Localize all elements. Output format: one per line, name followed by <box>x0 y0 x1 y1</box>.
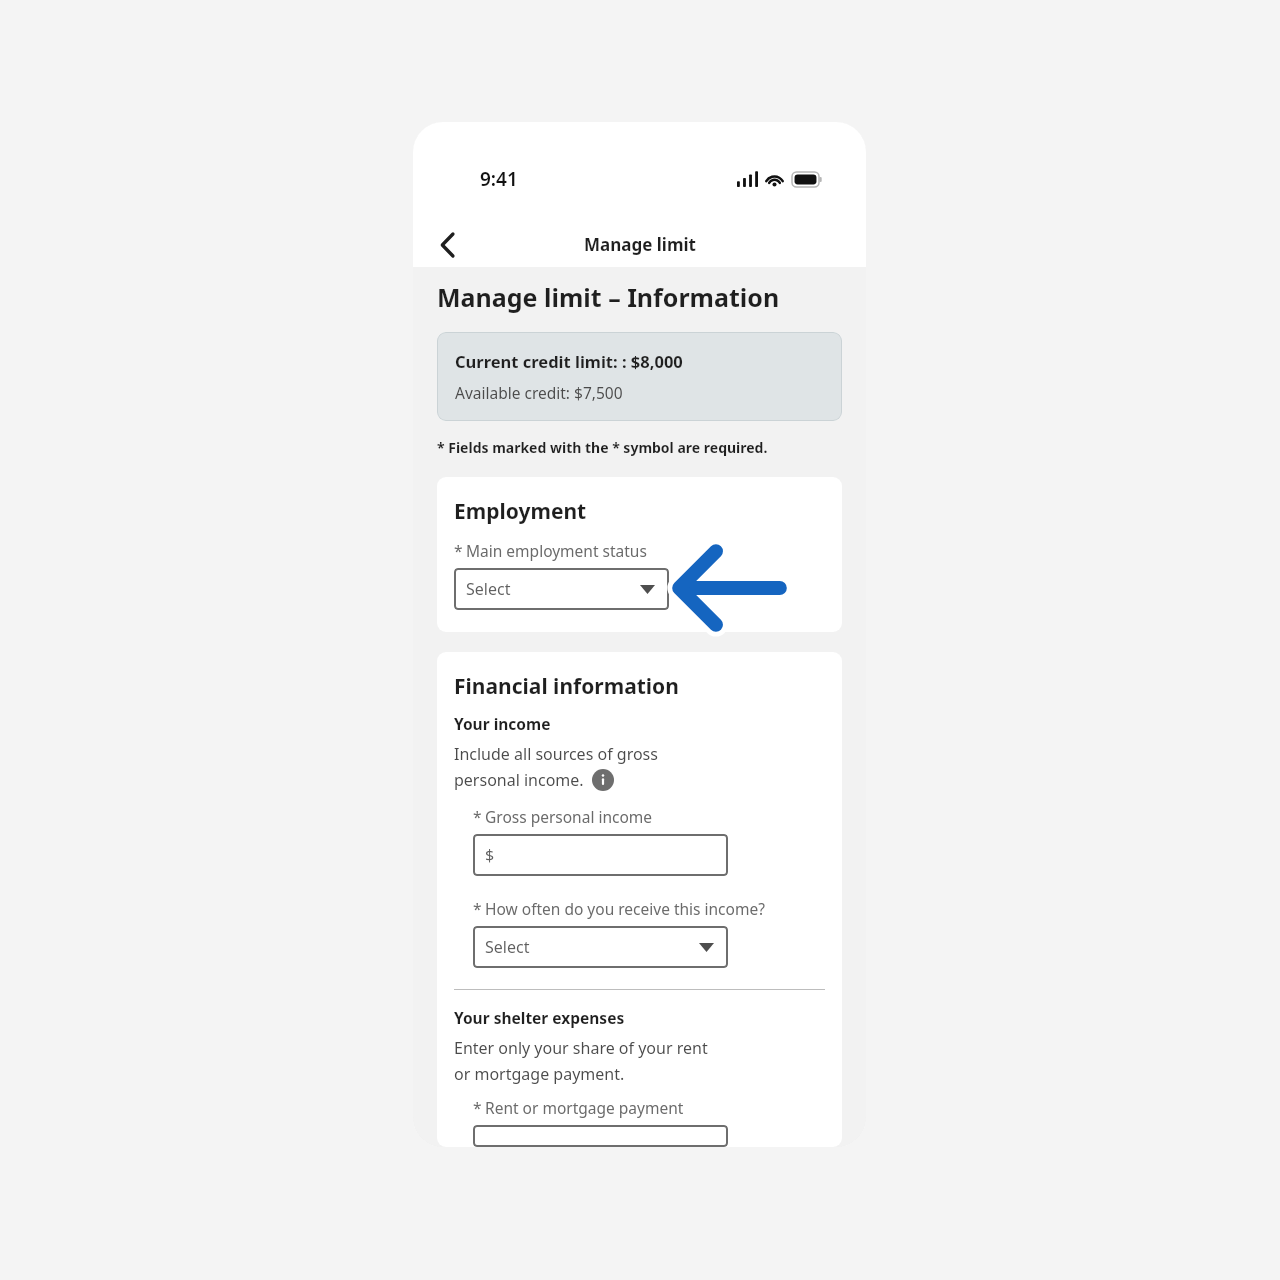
staticText: Gross personal income <box>485 806 653 827</box>
staticText: Manage limit <box>584 233 696 256</box>
staticText: Enter only your share of your rent <box>454 1037 708 1059</box>
button[interactable]: Select <box>473 926 728 968</box>
staticText: Main employment status <box>466 540 647 561</box>
staticText: personal income. <box>454 769 584 791</box>
staticText: Employment <box>454 497 587 526</box>
staticText: * <box>473 1097 482 1118</box>
staticText: Financial information <box>454 672 679 701</box>
staticText: Your income <box>454 713 551 734</box>
staticText: or mortgage payment. <box>454 1063 625 1085</box>
staticText: * Fields marked with the * symbol are re… <box>437 438 768 457</box>
staticText: * <box>454 540 463 561</box>
staticText: * <box>473 898 482 919</box>
button[interactable] <box>473 1125 728 1147</box>
staticText: Select <box>466 578 640 600</box>
staticText: How often do you receive this income? <box>485 898 765 919</box>
staticText: Available credit: $7,500 <box>455 382 623 403</box>
staticText: Manage limit – Information <box>437 280 780 314</box>
button[interactable]: More information about gross personal in… <box>592 769 614 791</box>
button[interactable]: $ <box>473 834 728 876</box>
staticText: Your shelter expenses <box>454 1007 625 1028</box>
staticText: 9:41 <box>480 166 518 192</box>
button[interactable]: Back <box>425 223 469 267</box>
staticText: Select <box>485 936 699 958</box>
staticText: Current credit limit: : $8,000 <box>455 350 683 372</box>
staticText: Include all sources of gross <box>454 743 658 765</box>
button[interactable]: Select <box>454 568 669 610</box>
staticText: $ <box>485 844 495 866</box>
staticText: * <box>473 806 482 827</box>
staticText: Rent or mortgage payment <box>485 1097 684 1118</box>
